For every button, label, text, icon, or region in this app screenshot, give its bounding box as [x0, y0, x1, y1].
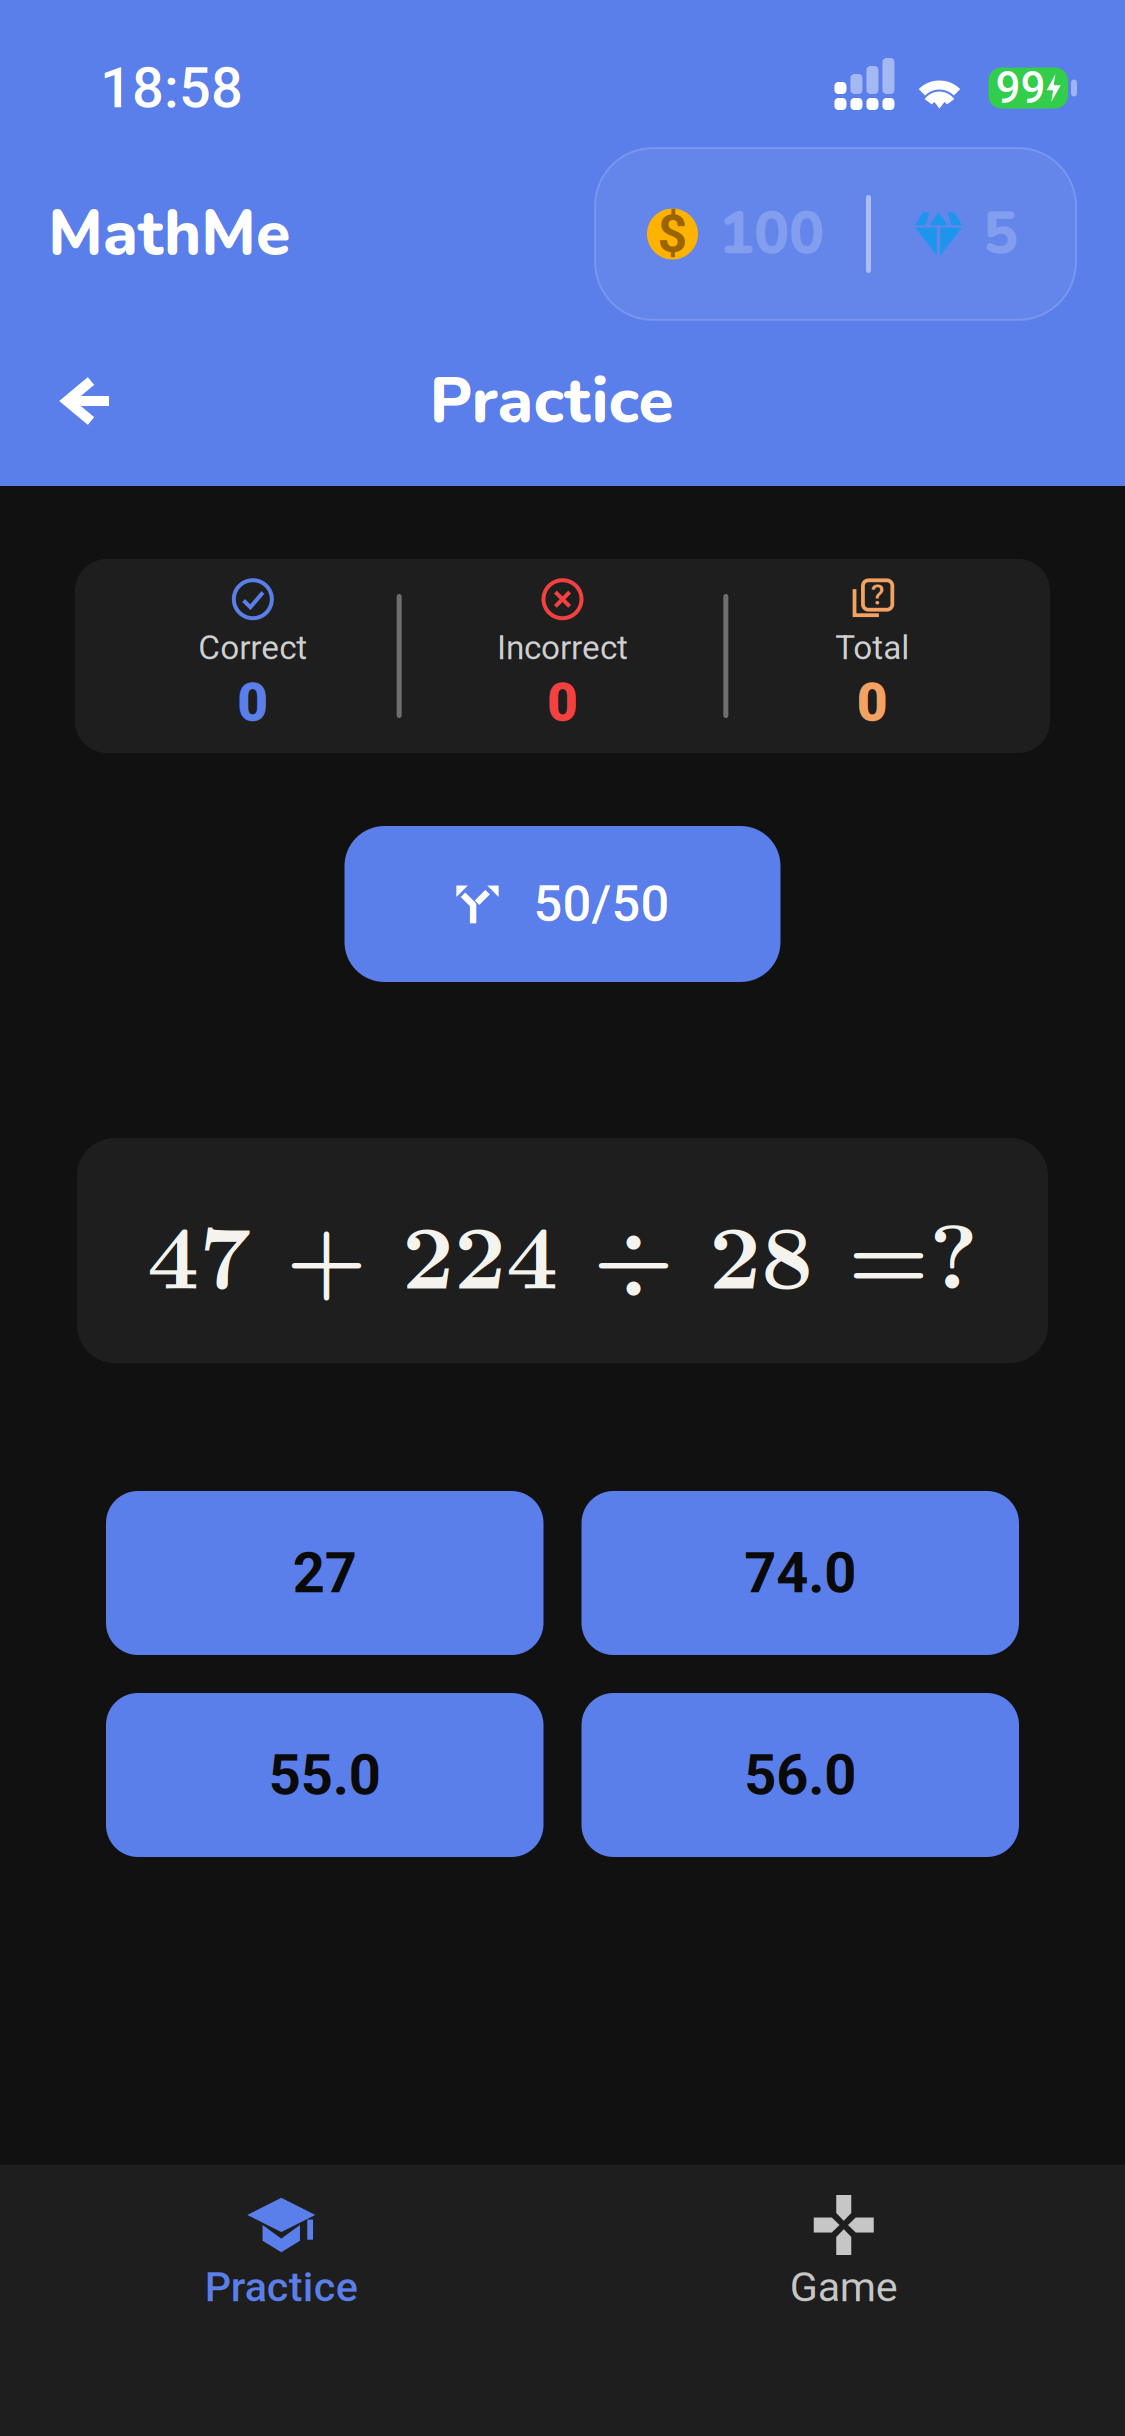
staticText: 0 [857, 671, 888, 734]
staticText: ? [871, 579, 885, 611]
staticText: Practice [429, 357, 673, 445]
button[interactable]: Practice [0, 2165, 562, 2436]
staticText: Correct [198, 628, 307, 667]
staticText: 0 [237, 671, 268, 734]
button[interactable]: 56.0 [581, 1693, 1019, 1857]
staticText: 100 [719, 194, 824, 274]
staticText: Practice [205, 2263, 358, 2311]
staticText: 55.0 [269, 1742, 381, 1808]
button[interactable]: Game [562, 2165, 1125, 2436]
staticText: 47 + 224 ÷ 28 =? [147, 1186, 978, 1315]
button[interactable]: 55.0 [106, 1693, 543, 1857]
staticText: MathMe [48, 191, 290, 277]
button[interactable]: 27 [106, 1491, 543, 1655]
staticText: 99 [995, 62, 1045, 114]
staticText: $ [657, 204, 687, 264]
button[interactable]: 50/50 [344, 826, 780, 982]
staticText: 27 [293, 1540, 357, 1606]
staticText: Incorrect [497, 628, 628, 667]
staticText: Game [790, 2263, 898, 2311]
staticText: 0 [547, 671, 578, 734]
staticText: 50/50 [533, 874, 669, 934]
staticText: 74.0 [744, 1540, 856, 1606]
staticText: Total [835, 628, 909, 667]
staticText: 18:58 [100, 55, 243, 121]
button[interactable]: 74.0 [581, 1491, 1019, 1655]
staticText: 5 [983, 194, 1018, 274]
button[interactable]: Back [38, 346, 138, 456]
staticText: 56.0 [744, 1742, 856, 1808]
